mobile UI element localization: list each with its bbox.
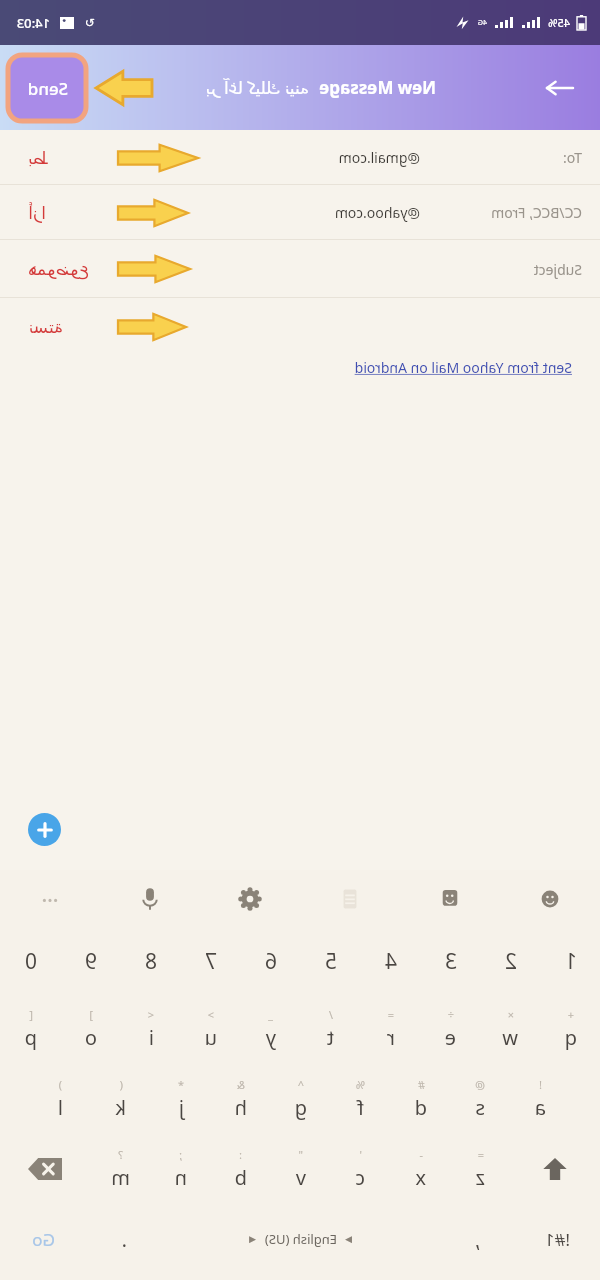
- staticText: w: [502, 1024, 518, 1051]
- button[interactable]: 8: [120, 928, 180, 994]
- staticText: ": [298, 1147, 303, 1162]
- button[interactable]: ;: [150, 1134, 210, 1204]
- button[interactable]: [: [0, 994, 60, 1064]
- button[interactable]: Backspace: [0, 1134, 90, 1204]
- button[interactable]: ]: [60, 994, 120, 1064]
- button[interactable]: /: [300, 994, 360, 1064]
- button[interactable]: ×: [480, 994, 540, 1064]
- staticText: <: [147, 1007, 154, 1022]
- button[interactable]: نستة: [0, 298, 600, 356]
- button[interactable]: ?: [90, 1134, 150, 1204]
- button[interactable]: Keyboard tool 5: [500, 870, 600, 928]
- staticText: 3: [444, 947, 457, 976]
- staticText: ▶: [345, 1234, 352, 1244]
- staticText: j: [178, 1094, 184, 1121]
- button[interactable]: ^: [270, 1064, 330, 1134]
- button[interactable]: ": [270, 1134, 330, 1204]
- button[interactable]: Keyboard tool 4: [400, 870, 500, 928]
- button[interactable]: (: [90, 1064, 150, 1134]
- button[interactable]: 9: [60, 928, 120, 994]
- button[interactable]: @: [450, 1064, 510, 1134]
- button[interactable]: =: [450, 1134, 510, 1204]
- staticText: /: [328, 1007, 333, 1022]
- button[interactable]: Add attachment: [28, 813, 61, 846]
- button[interactable]: 2: [480, 928, 540, 994]
- staticText: u: [204, 1024, 217, 1051]
- button[interactable]: :: [210, 1134, 270, 1204]
- staticText: Send: [27, 77, 68, 100]
- button[interactable]: 1: [540, 928, 600, 994]
- button[interactable]: *: [150, 1064, 210, 1134]
- button[interactable]: >: [180, 994, 240, 1064]
- button[interactable]: ,: [440, 1204, 513, 1274]
- staticText: CC/BCC, From: [491, 203, 582, 222]
- button[interactable]: Back: [540, 68, 580, 108]
- staticText: Go: [32, 1228, 55, 1251]
- button[interactable]: %: [330, 1064, 390, 1134]
- staticText: 0: [24, 947, 37, 976]
- button[interactable]: 5: [300, 928, 360, 994]
- staticText: بر آغا كيلك نينه: [205, 76, 309, 99]
- staticText: v: [295, 1164, 306, 1191]
- staticText: ◀: [249, 1234, 256, 1244]
- button[interactable]: <: [120, 994, 180, 1064]
- staticText: s: [475, 1094, 485, 1121]
- staticText: ×: [507, 1007, 514, 1022]
- staticText: 7: [204, 947, 217, 976]
- button[interactable]: =: [360, 994, 420, 1064]
- button[interactable]: -: [390, 1134, 450, 1204]
- button[interactable]: ◀: [160, 1204, 440, 1274]
- staticText: ): [58, 1077, 62, 1092]
- button[interactable]: !#1: [513, 1204, 600, 1274]
- button[interactable]: Subject: [0, 240, 600, 298]
- staticText: &: [236, 1077, 245, 1092]
- staticText: x: [415, 1164, 426, 1191]
- staticText: [: [29, 1007, 33, 1022]
- staticText: n: [174, 1164, 187, 1191]
- staticText: l: [57, 1094, 63, 1121]
- staticText: m: [111, 1164, 130, 1191]
- staticText: !#1: [544, 1228, 570, 1251]
- button[interactable]: 4: [360, 928, 420, 994]
- button[interactable]: 6: [240, 928, 300, 994]
- button[interactable]: _: [240, 994, 300, 1064]
- staticText: !: [539, 1077, 542, 1092]
- staticText: Sent from Yahoo Mail on Android: [354, 358, 572, 377]
- staticText: New Message: [319, 76, 436, 99]
- staticText: بط: [28, 148, 49, 168]
- button[interactable]: &: [210, 1064, 270, 1134]
- button[interactable]: Send: [8, 55, 86, 121]
- button[interactable]: Shift: [510, 1134, 600, 1204]
- button[interactable]: 0: [0, 928, 60, 994]
- button[interactable]: Keyboard tool 0: [0, 870, 100, 928]
- button[interactable]: !: [510, 1064, 570, 1134]
- staticText: i: [148, 1024, 154, 1051]
- staticText: #: [417, 1077, 425, 1092]
- button[interactable]: .: [87, 1204, 160, 1274]
- button[interactable]: ): [30, 1064, 90, 1134]
- staticText: k: [115, 1094, 126, 1121]
- button[interactable]: CC/BCC, From: [0, 185, 600, 240]
- staticText: z: [475, 1164, 485, 1191]
- button[interactable]: ÷: [420, 994, 480, 1064]
- button[interactable]: Go: [0, 1204, 87, 1274]
- staticText: t: [326, 1024, 334, 1051]
- staticText: ': [359, 1147, 362, 1162]
- staticText: 45%: [548, 15, 570, 30]
- button[interactable]: To:: [0, 130, 600, 185]
- staticText: :: [239, 1147, 242, 1162]
- staticText: 4G: [477, 18, 487, 28]
- button[interactable]: ': [330, 1134, 390, 1204]
- staticText: To:: [562, 148, 582, 167]
- staticText: +: [567, 1007, 574, 1022]
- staticText: f: [357, 1094, 364, 1121]
- button[interactable]: Keyboard tool 1: [100, 870, 200, 928]
- staticText: b: [234, 1164, 247, 1191]
- button[interactable]: Keyboard tool 2: [200, 870, 300, 928]
- button[interactable]: 7: [180, 928, 240, 994]
- button[interactable]: +: [540, 994, 600, 1064]
- button[interactable]: 3: [420, 928, 480, 994]
- button[interactable]: #: [390, 1064, 450, 1134]
- staticText: 14:03: [16, 14, 50, 32]
